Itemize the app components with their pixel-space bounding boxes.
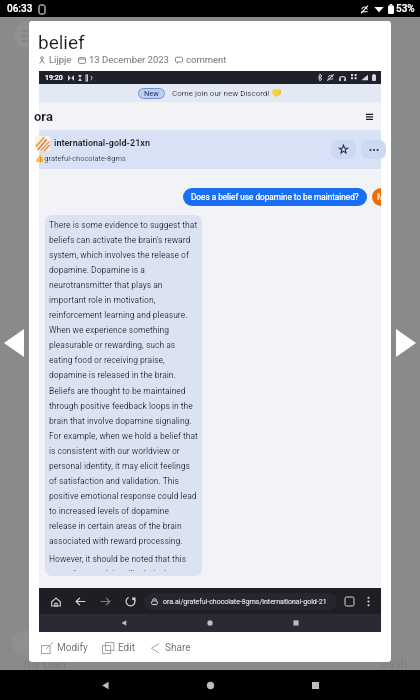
- staticText: M: [377, 192, 381, 203]
- staticText: my plan: [24, 657, 66, 671]
- staticText: Share: [165, 642, 191, 654]
- staticText: 13 December 2023: [89, 54, 169, 65]
- staticText: There is some evidence to suggest that b…: [49, 220, 198, 380]
- staticText: Edit: [118, 642, 135, 654]
- staticText: New: [144, 89, 159, 98]
- staticText: 19:20: [45, 74, 63, 82]
- button[interactable]: Share: [142, 638, 198, 658]
- staticText: trash: [380, 657, 408, 671]
- button[interactable]: More: [361, 594, 376, 609]
- staticText: international-gold-21xn: [54, 138, 150, 149]
- button[interactable]: Edit: [95, 638, 142, 658]
- button[interactable]: Reload: [123, 594, 138, 609]
- button[interactable]: Previous image: [4, 328, 24, 358]
- staticText: ora.ai/grateful-chocolate-8gms/internati…: [163, 598, 327, 606]
- button[interactable]: Back: [73, 594, 88, 609]
- button[interactable]: New: [144, 89, 159, 98]
- staticText: comment: [186, 54, 227, 65]
- button[interactable]: ora.ai/grateful-chocolate-8gms/internati…: [151, 593, 333, 610]
- staticText: 👍grateful-chocolate-8gms: [35, 154, 126, 163]
- staticText: 06:33: [7, 3, 33, 15]
- staticText: Lijpje: [49, 54, 72, 65]
- staticText: ora: [34, 109, 53, 124]
- button[interactable]: Home: [48, 594, 63, 609]
- button[interactable]: Tabs: [342, 594, 357, 609]
- button[interactable]: Modify: [34, 638, 95, 658]
- staticText: Does a belief use dopamine to be maintai…: [191, 192, 359, 202]
- button[interactable]: Favourite: [331, 140, 356, 159]
- staticText: Beliefs are thought to be maintained thr…: [49, 386, 198, 546]
- staticText: Modify: [57, 642, 88, 654]
- button[interactable]: Next image: [396, 328, 416, 358]
- staticText: 53%: [396, 3, 415, 15]
- button[interactable]: Forward: [98, 594, 113, 609]
- staticText: However, it should be noted that this ar…: [49, 554, 198, 571]
- button[interactable]: Menu: [362, 109, 376, 123]
- staticText: Come join our new Discord! 💛: [172, 89, 282, 98]
- button[interactable]: More options: [361, 140, 386, 159]
- staticText: belief: [38, 31, 85, 53]
